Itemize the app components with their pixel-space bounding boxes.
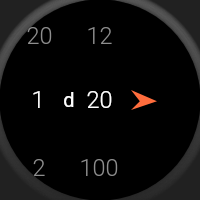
staticText: 20 <box>26 22 53 49</box>
button[interactable]: 100 <box>69 154 129 181</box>
button[interactable]: 2 <box>9 154 69 181</box>
staticText: 12 <box>86 22 113 49</box>
button[interactable]: 1 <box>9 86 69 113</box>
button[interactable]: 20 <box>69 86 129 113</box>
staticText: 1 <box>31 86 45 113</box>
button[interactable]: 20 <box>9 22 69 49</box>
staticText: 2 <box>32 154 46 181</box>
staticText: 20 <box>86 86 113 113</box>
button[interactable]: Roll <box>129 86 189 113</box>
button[interactable]: 12 <box>69 22 129 49</box>
staticText: 100 <box>79 154 119 181</box>
staticText: d <box>63 88 75 111</box>
